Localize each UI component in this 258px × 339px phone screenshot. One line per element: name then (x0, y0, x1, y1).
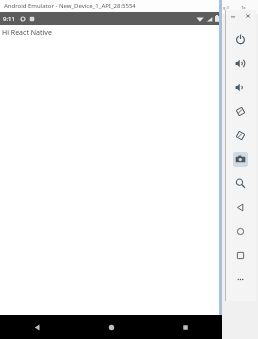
staticText: 9:11 (3, 15, 15, 23)
button[interactable]: Back (225, 195, 256, 219)
staticText: Android Emulator - New_Device_1_API_28:5… (4, 2, 136, 10)
button[interactable]: Rotate left (225, 99, 256, 123)
button[interactable]: Close (240, 10, 256, 22)
button[interactable]: Recent apps (148, 315, 222, 339)
button[interactable]: Overview (225, 243, 256, 267)
button[interactable]: Power (225, 27, 256, 51)
button[interactable]: Zoom (225, 171, 256, 195)
button[interactable]: Back (0, 315, 74, 339)
staticText: Hi React Native (2, 28, 52, 38)
button[interactable]: Home (225, 219, 256, 243)
other: Take screenshot (233, 152, 248, 167)
button[interactable]: More (225, 267, 256, 291)
button[interactable]: Volume up (225, 51, 256, 75)
staticText: g 3 Ta (223, 5, 246, 10)
button[interactable]: Home (74, 315, 148, 339)
button[interactable]: Take screenshot (225, 147, 256, 171)
button[interactable]: Volume down (225, 75, 256, 99)
button[interactable]: Minimize (225, 10, 240, 22)
button[interactable]: Rotate right (225, 123, 256, 147)
